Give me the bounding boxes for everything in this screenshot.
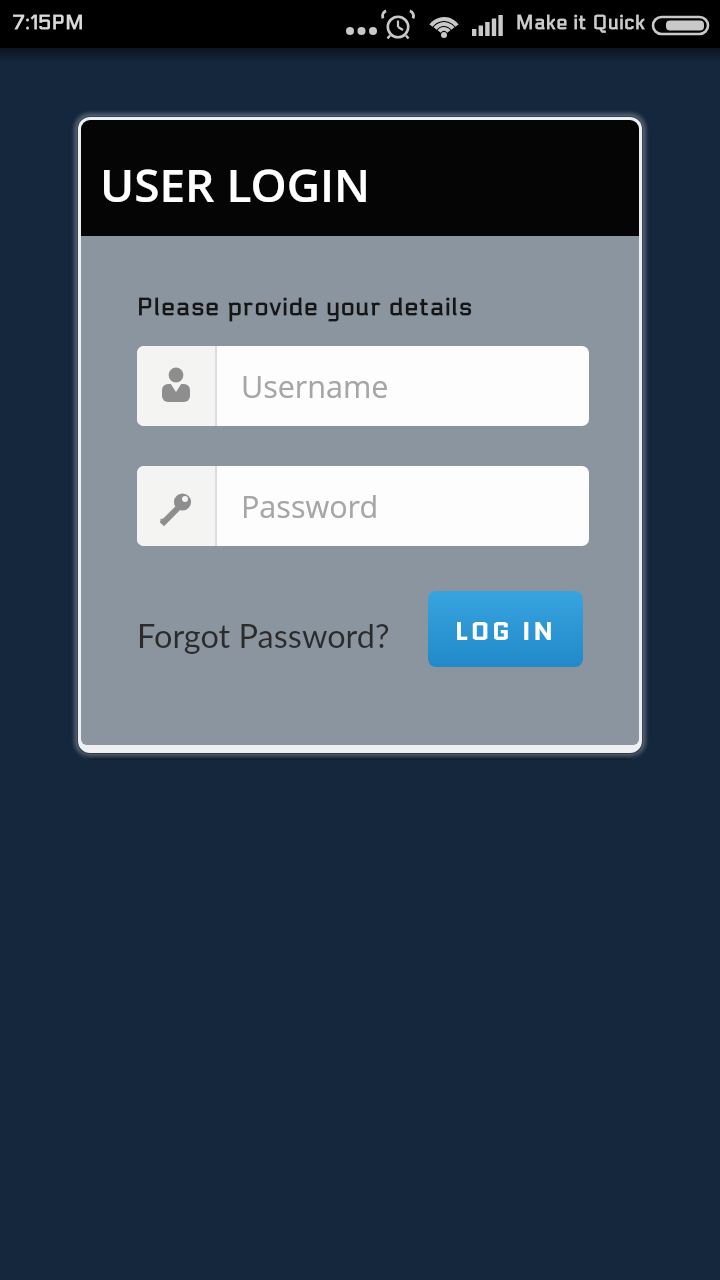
button[interactable]: Username — [137, 346, 589, 426]
staticText: LOG IN — [455, 612, 556, 649]
button[interactable]: Forgot Password? — [137, 616, 390, 655]
staticText: Make it Quick — [516, 12, 646, 35]
staticText: Password — [241, 485, 379, 527]
staticText: 7:15PM — [13, 11, 84, 35]
staticText: Username — [241, 365, 389, 407]
button[interactable]: Password — [137, 466, 589, 546]
staticText: Please provide your details — [137, 293, 474, 322]
staticText: USER LOGIN — [100, 153, 371, 216]
button[interactable]: LOG IN — [428, 591, 583, 667]
